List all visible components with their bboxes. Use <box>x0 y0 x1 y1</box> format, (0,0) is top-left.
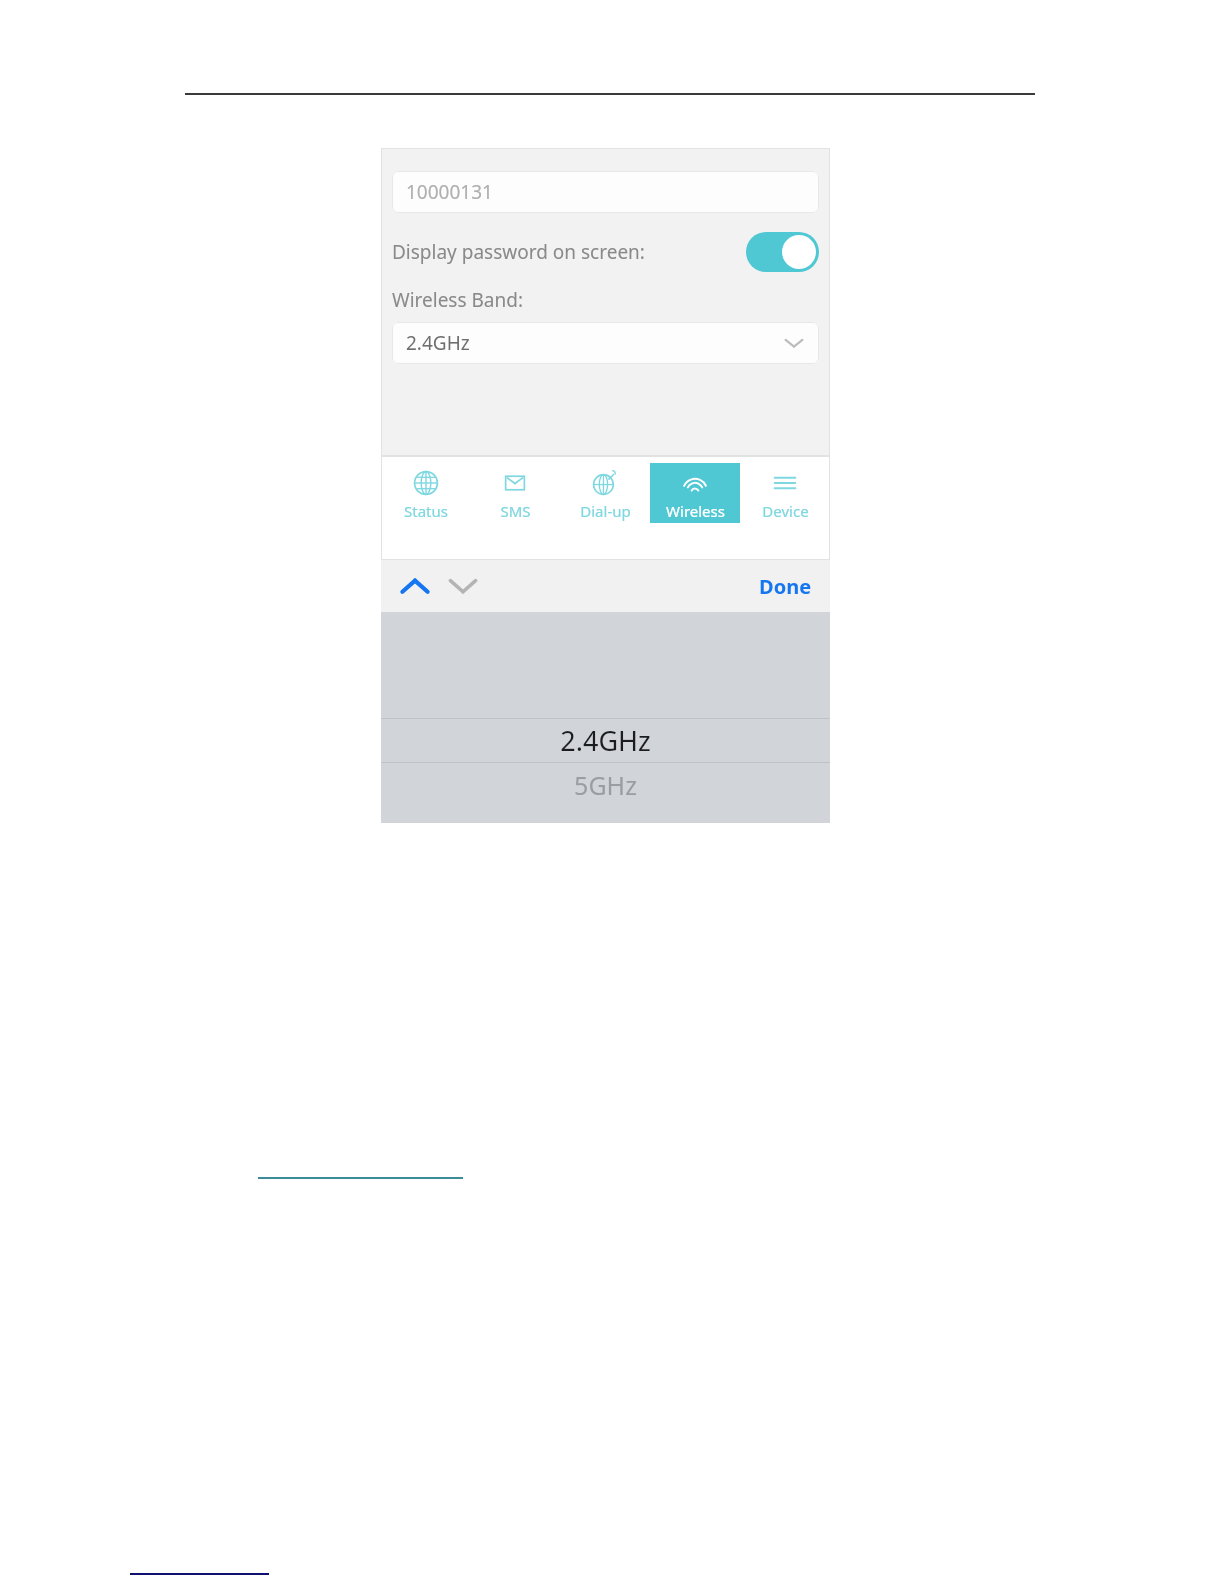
staticText: Status <box>404 501 448 521</box>
button[interactable]: Status <box>381 463 470 523</box>
staticText: Device <box>762 501 809 521</box>
button[interactable]: 2.4GHz <box>392 322 819 364</box>
button[interactable]: Done <box>741 565 830 608</box>
button[interactable]: Previous field <box>395 566 435 606</box>
button[interactable]: 10000131 <box>392 171 819 213</box>
button[interactable]: 2.4GHz <box>381 719 830 762</box>
staticText: Wireless <box>666 501 725 521</box>
staticText: Dial-up <box>580 501 631 521</box>
staticText: SMS <box>500 501 531 521</box>
staticText: 2.4GHz <box>406 330 470 356</box>
button[interactable]: 5GHz <box>381 763 830 806</box>
button[interactable]: Next field <box>443 566 483 606</box>
staticText: 5GHz <box>574 768 637 802</box>
button[interactable]: SMS <box>470 463 560 523</box>
staticText: Done <box>759 573 812 600</box>
staticText: 10000131 <box>406 179 493 205</box>
button[interactable]: Dial-up <box>560 463 650 523</box>
staticText: Display password on screen: <box>392 239 645 265</box>
button[interactable]: Wireless <box>650 463 740 523</box>
staticText: 2.4GHz <box>560 722 651 759</box>
button[interactable]: Display password toggle <box>746 232 819 272</box>
staticText: Wireless Band: <box>392 287 524 313</box>
button[interactable]: Device <box>740 463 830 523</box>
